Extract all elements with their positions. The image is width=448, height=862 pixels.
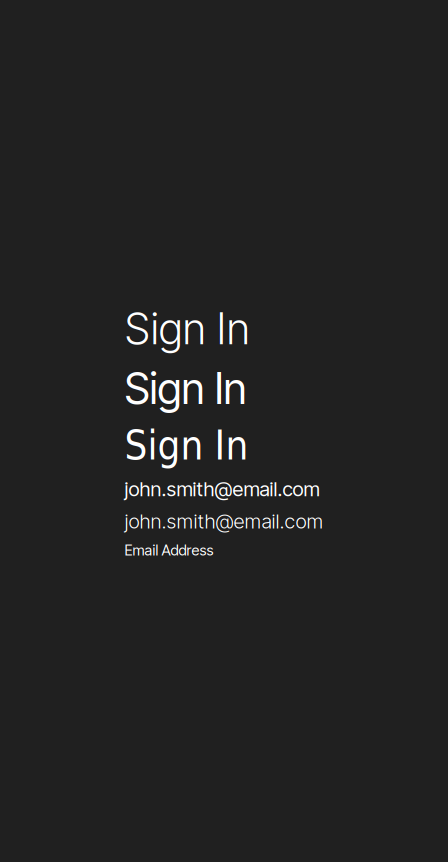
staticText: Sign In — [124, 363, 246, 414]
staticText: Sign In — [124, 422, 248, 469]
staticText: john.smith@email.com — [124, 509, 323, 533]
staticText: Email Address — [124, 541, 213, 559]
staticText: john.smith@email.com — [124, 477, 319, 501]
staticText: Sign In — [124, 303, 249, 355]
